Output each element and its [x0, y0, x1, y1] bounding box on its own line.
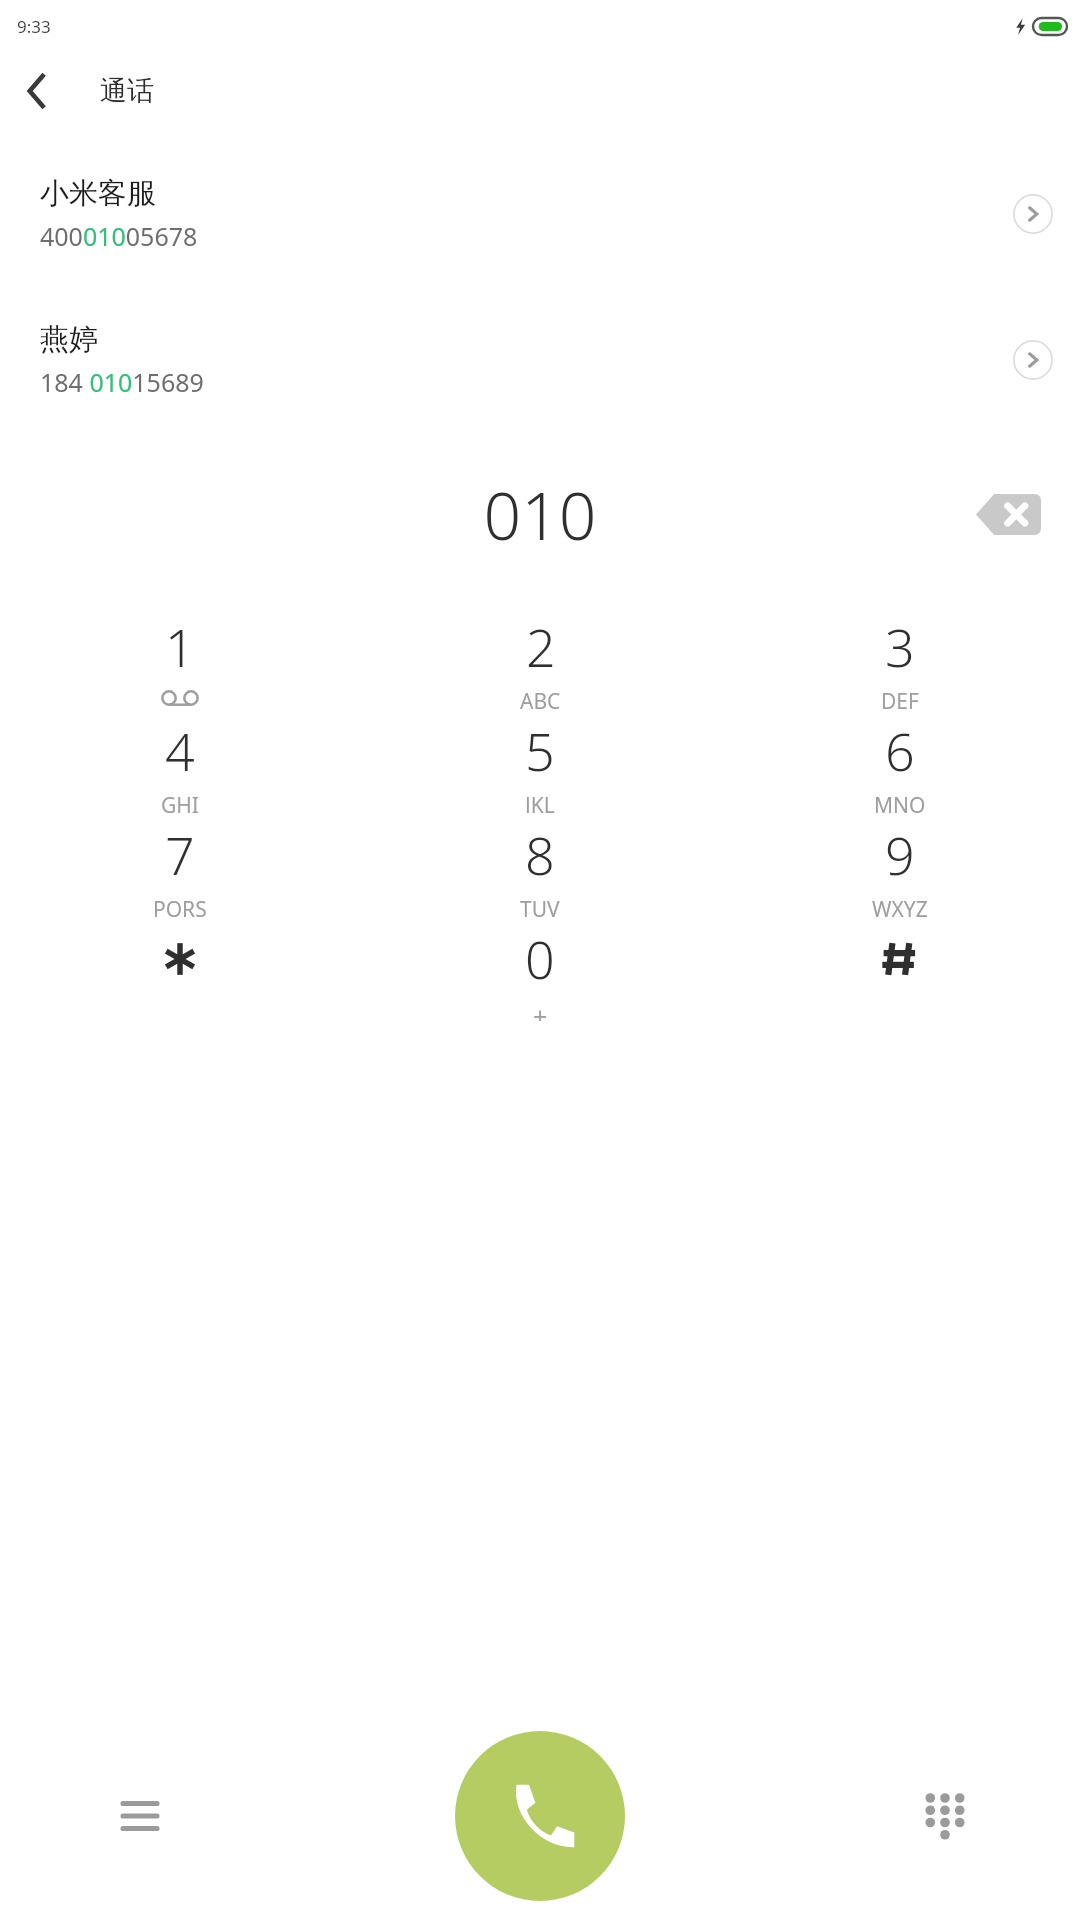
- staticText: 3: [885, 611, 915, 682]
- button[interactable]: 3: [720, 608, 1080, 712]
- button[interactable]: 7: [0, 816, 360, 920]
- staticText: 8: [525, 819, 555, 890]
- button[interactable]: 5: [360, 712, 720, 816]
- staticText: ABC: [520, 687, 561, 709]
- button[interactable]: Back: [0, 55, 72, 127]
- staticText: 9:33: [17, 15, 51, 38]
- staticText: 通话: [100, 74, 154, 108]
- staticText: MNO: [874, 791, 926, 813]
- staticText: 2: [526, 611, 556, 682]
- staticText: 1: [165, 611, 195, 682]
- staticText: WXYZ: [872, 895, 928, 917]
- button[interactable]: [720, 920, 1080, 1024]
- staticText: GHI: [161, 791, 199, 813]
- button[interactable]: 4: [0, 712, 360, 816]
- staticText: 5: [525, 715, 555, 786]
- button[interactable]: Call: [455, 1731, 625, 1901]
- button[interactable]: Menu: [103, 1779, 177, 1853]
- button[interactable]: 9: [720, 816, 1080, 920]
- staticText: 小米客服: [40, 175, 156, 212]
- staticText: 184 01015689: [40, 365, 204, 399]
- button[interactable]: Delete: [974, 487, 1042, 541]
- staticText: 9: [885, 819, 915, 890]
- staticText: +: [533, 999, 548, 1021]
- staticText: 燕婷: [40, 321, 98, 358]
- button[interactable]: 0: [360, 920, 720, 1024]
- button[interactable]: 2: [360, 608, 720, 712]
- button[interactable]: 燕婷: [0, 312, 1080, 408]
- staticText: JKL: [525, 791, 555, 813]
- button[interactable]: 8: [360, 816, 720, 920]
- staticText: 010: [483, 469, 597, 559]
- button[interactable]: 1: [0, 608, 360, 712]
- staticText: DEF: [881, 687, 919, 709]
- staticText: 6: [885, 715, 915, 786]
- button[interactable]: 小米客服: [0, 166, 1080, 262]
- button[interactable]: Dialpad: [908, 1779, 982, 1853]
- staticText: 4: [165, 715, 195, 786]
- button[interactable]: ,: [0, 920, 360, 1024]
- button[interactable]: Contact details: [1013, 340, 1053, 380]
- staticText: PQRS: [153, 895, 207, 917]
- staticText: 7: [165, 819, 195, 890]
- button[interactable]: Contact details: [1013, 194, 1053, 234]
- staticText: TUV: [520, 895, 560, 917]
- staticText: 0: [525, 923, 555, 994]
- staticText: 40001005678: [40, 219, 198, 253]
- button[interactable]: 6: [720, 712, 1080, 816]
